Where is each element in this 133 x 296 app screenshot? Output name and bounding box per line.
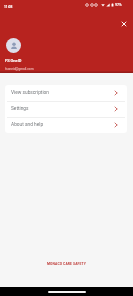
staticText: FS OneID [5,58,22,63]
button[interactable]: Settings [5,101,127,117]
button[interactable]: About and help [5,117,127,133]
staticText: Settings [11,106,29,112]
button[interactable]: View subscription [5,85,127,101]
staticText: 11:08 [4,5,13,9]
staticText: 97% [115,3,122,7]
staticText: View subscription [11,90,49,96]
button[interactable]: Account [6,38,21,53]
button[interactable]: Close [115,15,133,33]
staticText: About and help [11,122,44,128]
staticText: fsoneid@gmail.com [5,67,34,71]
staticText: MONACO CARE SAFETY [47,262,86,266]
